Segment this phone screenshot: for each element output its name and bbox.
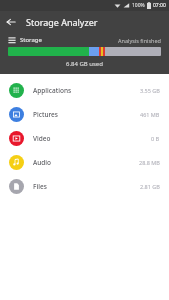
button[interactable]: Video bbox=[0, 126, 169, 150]
staticText: 6.84 GB used bbox=[66, 60, 103, 68]
button[interactable]: Pictures bbox=[0, 102, 169, 126]
staticText: Pictures bbox=[33, 110, 58, 119]
staticText: Audio bbox=[33, 158, 52, 167]
staticText: Files bbox=[33, 182, 47, 191]
staticText: Video bbox=[33, 134, 51, 143]
staticText: Storage Analyzer bbox=[26, 16, 98, 28]
staticText: 100% bbox=[132, 2, 145, 9]
staticText: Storage bbox=[20, 36, 42, 44]
button[interactable]: Audio bbox=[0, 150, 169, 174]
button[interactable]: Files bbox=[0, 174, 169, 198]
staticText: 3.55 GB bbox=[140, 87, 160, 94]
button[interactable]: Back bbox=[0, 11, 22, 33]
staticText: 2.81 GB bbox=[140, 183, 160, 190]
staticText: Analysis finished bbox=[118, 37, 161, 44]
staticText: 461 MB bbox=[140, 111, 160, 118]
button[interactable]: Applications bbox=[0, 78, 169, 102]
staticText: Applications bbox=[33, 86, 72, 95]
staticText: 0 B bbox=[151, 135, 160, 142]
staticText: 07:00 bbox=[153, 2, 166, 9]
staticText: 28.8 MB bbox=[139, 159, 160, 166]
